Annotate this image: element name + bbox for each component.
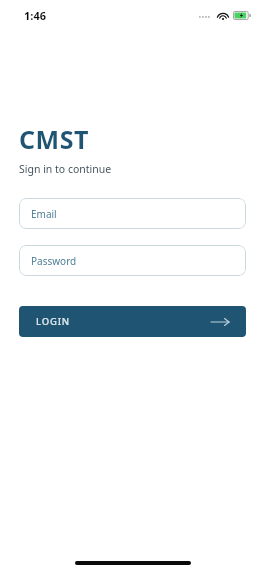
- staticText: LOGIN: [36, 315, 70, 328]
- button[interactable]: Email: [19, 198, 246, 229]
- button[interactable]: LOGIN: [19, 306, 246, 337]
- staticText: CMST: [19, 122, 89, 156]
- other: Login arrow: [211, 316, 229, 328]
- staticText: 1:46: [24, 8, 46, 23]
- staticText: Sign in to continue: [19, 162, 112, 176]
- staticText: Email: [31, 207, 57, 221]
- staticText: Password: [31, 254, 77, 268]
- button[interactable]: Password: [19, 245, 246, 276]
- other: Battery charging: [233, 11, 251, 20]
